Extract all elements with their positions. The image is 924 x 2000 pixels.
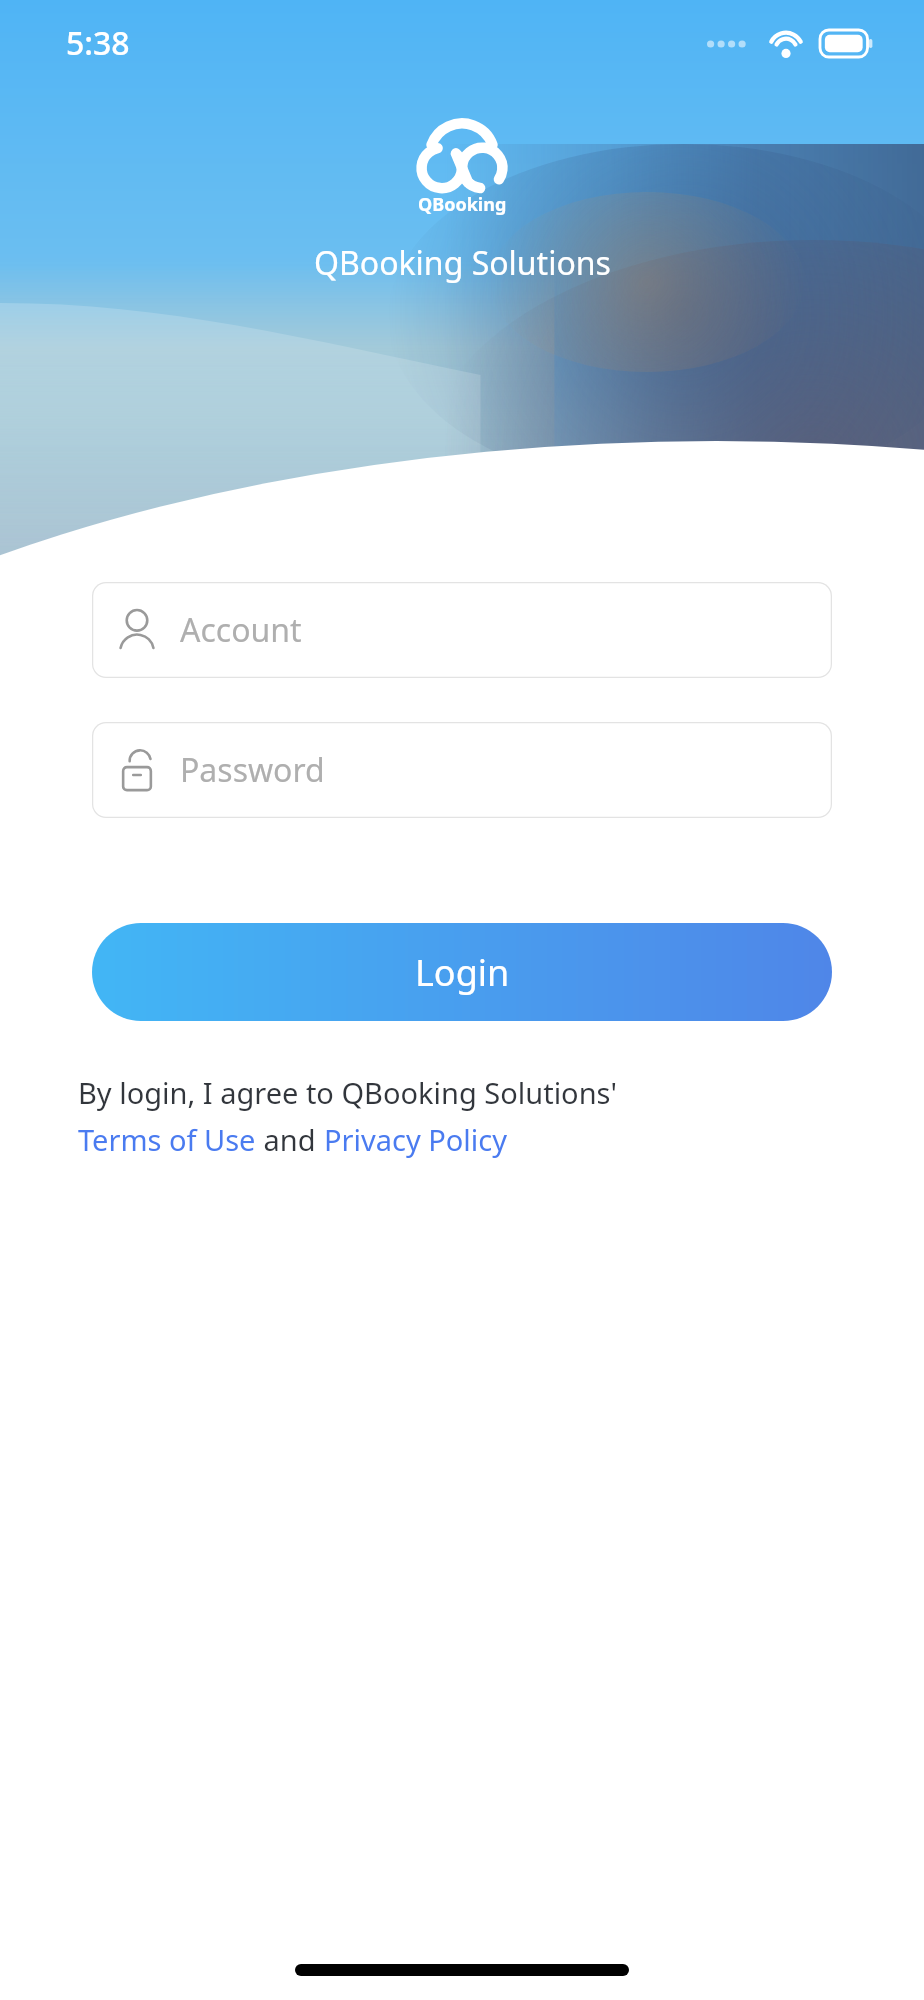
staticText: QBooking Solutions bbox=[314, 241, 611, 285]
button[interactable]: Account bbox=[92, 582, 832, 678]
staticText: Terms of Use bbox=[78, 1120, 256, 1159]
staticText: By login, I agree to QBooking Solutions' bbox=[78, 1073, 617, 1112]
staticText: Account bbox=[180, 608, 302, 652]
button[interactable]: Terms of Use bbox=[78, 1120, 256, 1159]
button[interactable]: Login bbox=[92, 923, 832, 1021]
button[interactable]: Privacy Policy bbox=[324, 1120, 508, 1159]
other: Account bbox=[116, 607, 158, 653]
other: Password bbox=[116, 746, 158, 794]
staticText: and bbox=[256, 1120, 324, 1159]
staticText: 5:38 bbox=[66, 21, 130, 65]
staticText: Login bbox=[415, 948, 510, 997]
staticText: QBooking bbox=[418, 192, 507, 217]
staticText: Password bbox=[180, 748, 325, 792]
staticText: Privacy Policy bbox=[324, 1120, 508, 1159]
button[interactable]: Password bbox=[92, 722, 832, 818]
